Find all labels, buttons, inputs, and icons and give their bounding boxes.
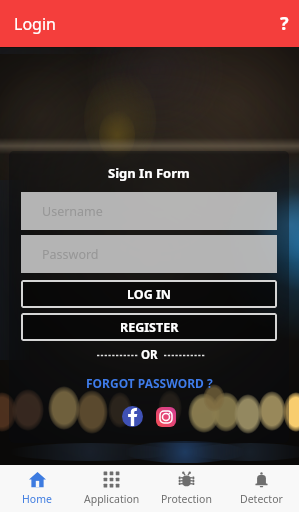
button[interactable]: LOG IN	[21, 280, 277, 308]
button[interactable]: Facebook	[122, 406, 143, 427]
button[interactable]: Application	[74, 465, 149, 512]
staticText: Detector	[240, 492, 283, 506]
button[interactable]: REGISTER	[21, 313, 277, 341]
staticText: LOG IN	[127, 286, 171, 303]
staticText: Home	[22, 492, 52, 506]
button[interactable]: Home	[0, 465, 74, 512]
staticText: Application	[84, 492, 140, 506]
staticText: REGISTER	[120, 319, 179, 336]
staticText: FORGOT PASSWORD ?	[86, 375, 213, 391]
staticText: OR	[135, 347, 164, 363]
staticText: ?	[280, 11, 289, 36]
button[interactable]: Help	[270, 9, 299, 38]
staticText: Sign In Form	[108, 164, 190, 182]
staticText: Password	[42, 246, 99, 263]
button[interactable]: Instagram	[156, 407, 176, 427]
staticText: Username	[42, 203, 103, 220]
button[interactable]: Username	[21, 192, 277, 230]
button[interactable]: Protection	[149, 465, 224, 512]
button[interactable]: Detector	[224, 465, 299, 512]
staticText: Login	[14, 13, 56, 35]
staticText: Protection	[161, 492, 212, 506]
button[interactable]: Password	[21, 235, 277, 273]
button[interactable]: FORGOT PASSWORD ?	[84, 373, 215, 393]
